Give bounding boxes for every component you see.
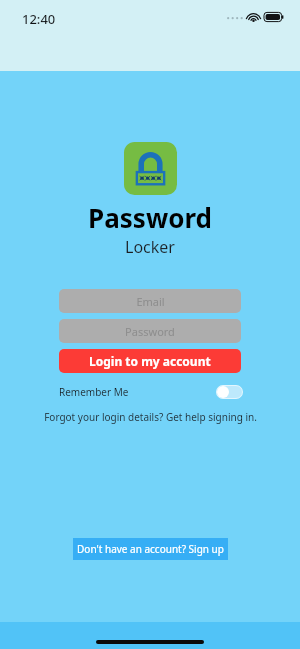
staticText: Remember Me — [59, 385, 129, 399]
staticText: Locker — [125, 236, 175, 258]
staticText: Don't have an account? Sign up — [77, 542, 224, 556]
staticText: Email — [136, 294, 165, 309]
staticText: 12:40 — [22, 10, 56, 28]
button[interactable]: Don't have an account? Sign up — [73, 538, 228, 560]
button[interactable]: Login to my account — [59, 349, 241, 373]
button[interactable]: Forgot your login details? Get help sign… — [44, 410, 257, 424]
staticText: Password — [88, 200, 212, 235]
staticText: Login to my account — [89, 353, 211, 369]
button[interactable]: Remember Me — [59, 383, 243, 401]
button[interactable]: Password — [59, 319, 241, 343]
button[interactable]: Email — [59, 289, 241, 313]
button[interactable]: Remember Me toggle — [216, 385, 243, 399]
staticText: Password — [125, 324, 175, 339]
other: Password Locker logo — [124, 142, 177, 195]
